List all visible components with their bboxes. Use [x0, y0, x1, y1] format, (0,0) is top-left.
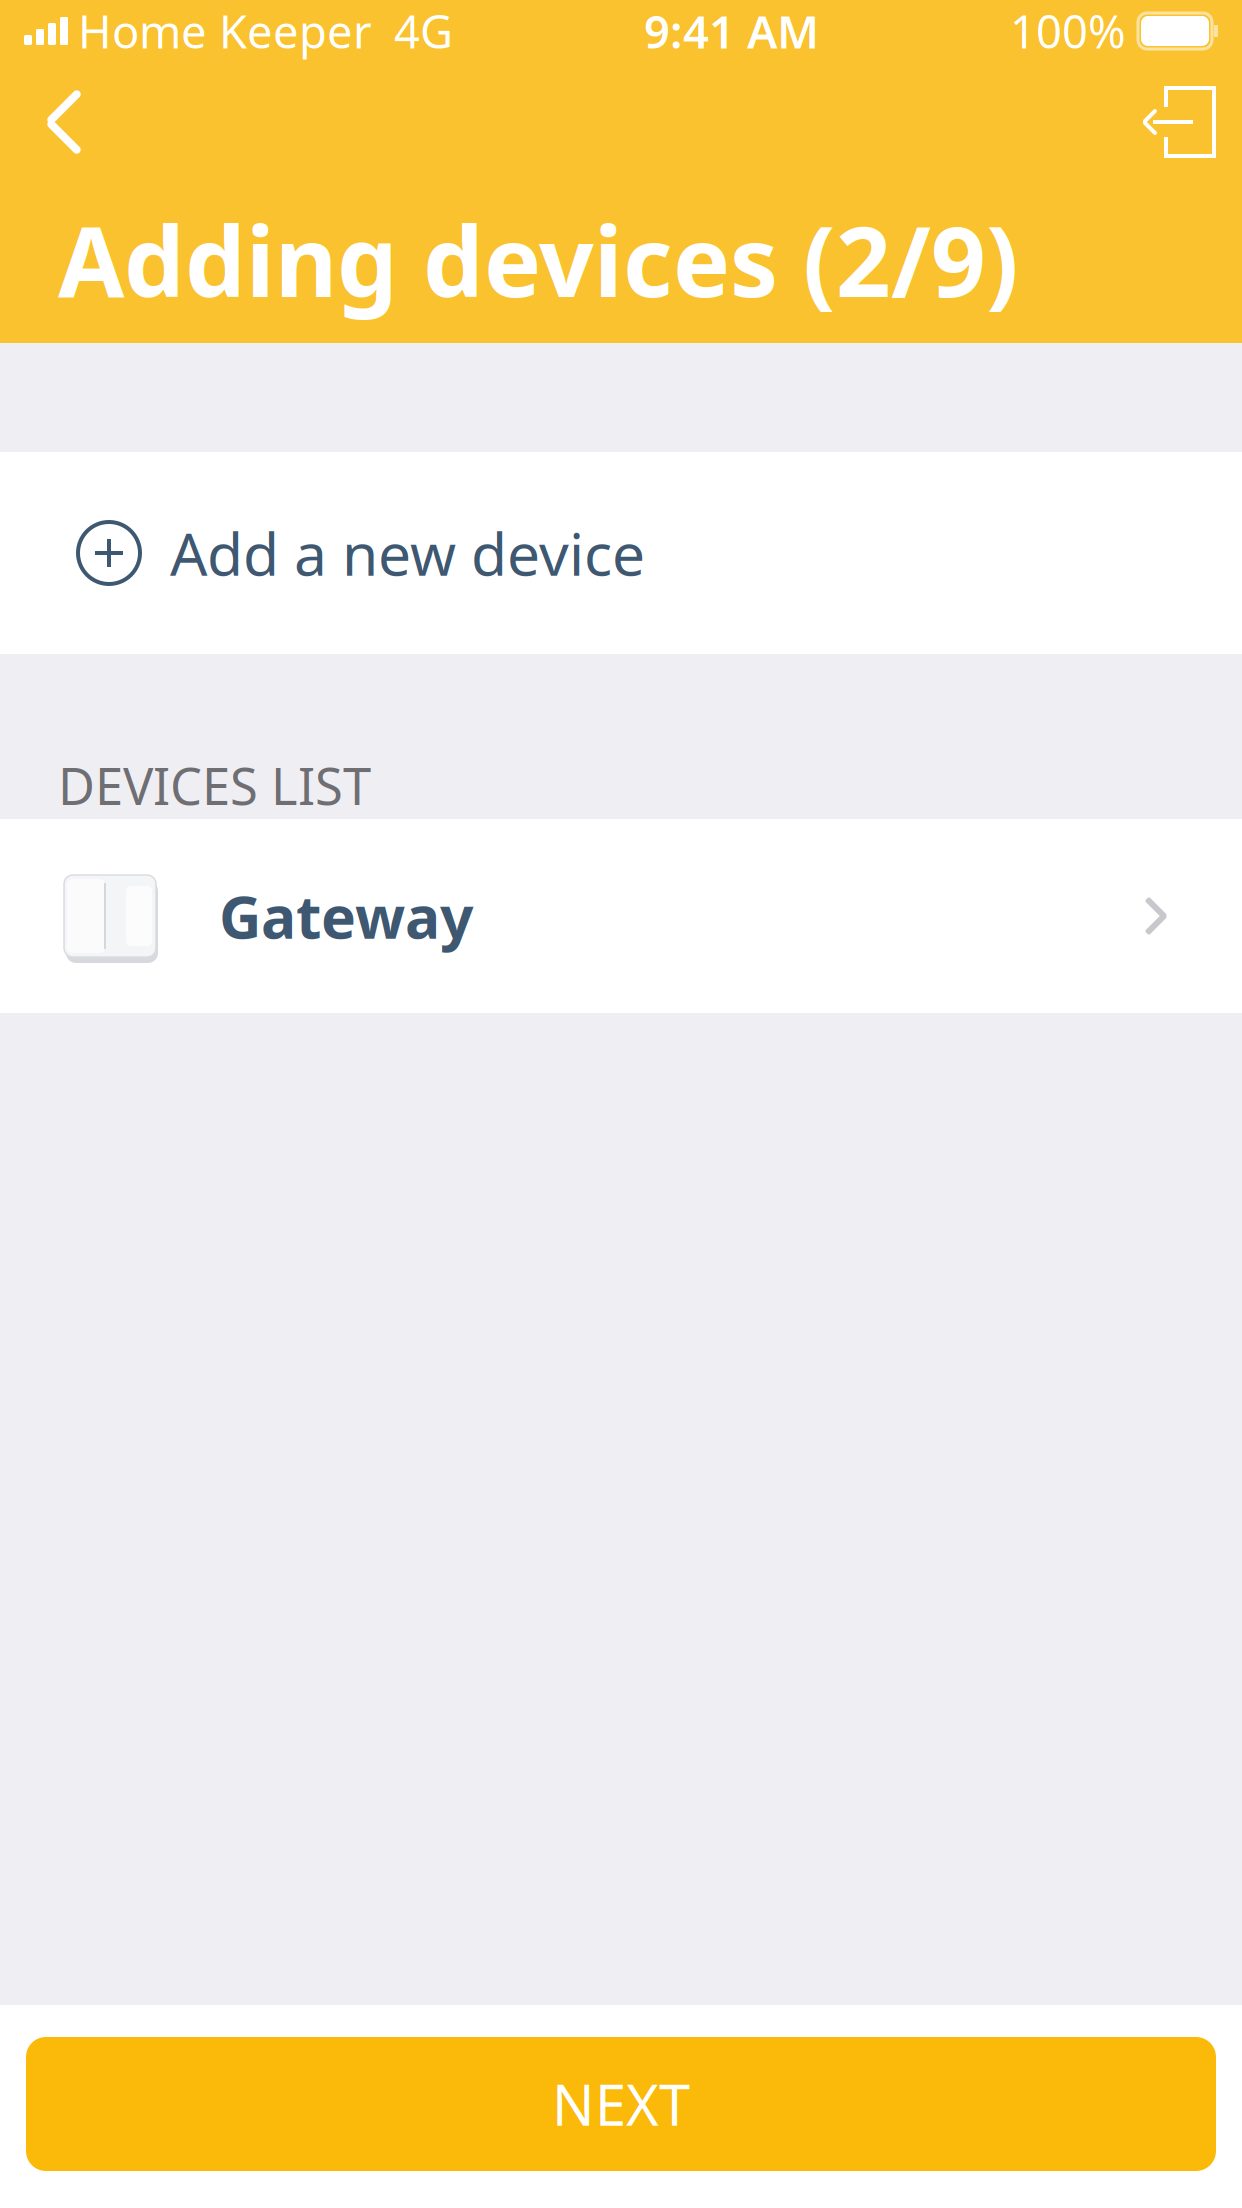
- button[interactable]: NEXT: [26, 2037, 1216, 2171]
- button[interactable]: Back: [16, 74, 112, 170]
- staticText: Home Keeper: [78, 1, 372, 61]
- staticText: Gateway: [219, 877, 473, 955]
- staticText: NEXT: [552, 2067, 690, 2141]
- staticText: Add a new device: [170, 514, 645, 592]
- staticText: Adding devices (2/9): [58, 196, 1019, 323]
- button[interactable]: Gateway: [0, 819, 1242, 1013]
- staticText: DEVICES LIST: [58, 752, 371, 819]
- staticText: 100%: [1010, 1, 1126, 61]
- button[interactable]: Add a new device: [0, 452, 1242, 654]
- staticText: 4G: [394, 1, 453, 61]
- staticText: 9:41 AM: [644, 1, 819, 61]
- button[interactable]: Log out: [1130, 74, 1226, 170]
